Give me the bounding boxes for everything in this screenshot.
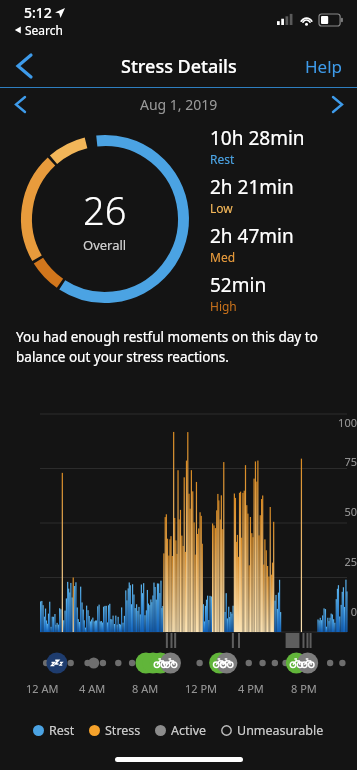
- staticText: Stress Details: [121, 54, 237, 79]
- staticText: Stress: [105, 722, 141, 739]
- staticText: 75: [323, 454, 357, 469]
- staticText: Aug 1, 2019: [140, 95, 218, 114]
- staticText: Help: [305, 55, 343, 78]
- button[interactable]: Back: [0, 45, 48, 87]
- staticText: Low: [210, 200, 233, 216]
- staticText: 2h 47min: [210, 223, 294, 249]
- staticText: Search: [25, 22, 63, 38]
- button[interactable]: Previous day: [0, 88, 40, 120]
- staticText: 0: [323, 604, 357, 619]
- button[interactable]: Unmeasurable: [221, 722, 324, 739]
- staticText: 5:12: [24, 3, 52, 22]
- staticText: 4 AM: [79, 681, 106, 696]
- staticText: Active: [171, 722, 207, 739]
- staticText: 25: [323, 554, 357, 569]
- staticText: Rest: [210, 151, 235, 167]
- button[interactable]: Help: [291, 47, 357, 86]
- button[interactable]: Active: [155, 722, 207, 739]
- staticText: 52min: [210, 272, 267, 298]
- staticText: Med: [210, 249, 236, 265]
- staticText: 8 PM: [291, 681, 317, 696]
- button[interactable]: Stress: [89, 722, 141, 739]
- staticText: 8 AM: [132, 681, 159, 696]
- staticText: High: [210, 298, 237, 314]
- staticText: You had enough restful moments on this d…: [16, 328, 341, 366]
- staticText: 10h 28min: [210, 125, 305, 151]
- staticText: 50: [323, 504, 357, 519]
- button[interactable]: Rest: [33, 722, 75, 739]
- staticText: 100: [323, 415, 357, 430]
- staticText: Overall: [83, 236, 127, 254]
- staticText: 12 PM: [185, 681, 218, 696]
- button[interactable]: Next day: [317, 88, 357, 120]
- staticText: Unmeasurable: [237, 722, 324, 739]
- staticText: 26: [83, 184, 127, 236]
- staticText: 4 PM: [238, 681, 264, 696]
- staticText: Rest: [49, 722, 75, 739]
- staticText: 12 AM: [26, 681, 59, 696]
- staticText: 2h 21min: [210, 174, 294, 200]
